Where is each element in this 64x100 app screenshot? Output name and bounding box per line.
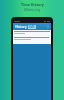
staticText: SMS (29, 25, 35, 29)
button[interactable] (13, 30, 51, 44)
staticText: 80sms.org (24, 8, 40, 12)
button[interactable]: More options (45, 24, 50, 29)
staticText: Time History (21, 2, 44, 7)
button[interactable]: History (15, 24, 36, 29)
staticText: History (15, 24, 27, 29)
